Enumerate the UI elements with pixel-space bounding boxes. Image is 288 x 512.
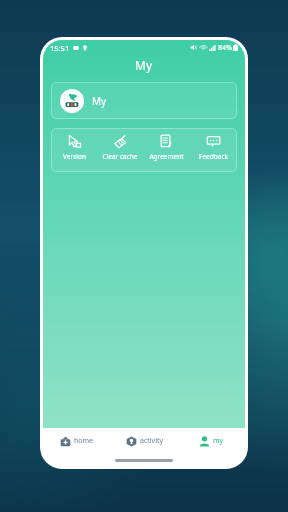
button[interactable]: Clear cache <box>97 128 143 172</box>
button[interactable]: activity <box>111 428 178 454</box>
staticText: My <box>135 57 153 73</box>
staticText: Version <box>63 152 86 161</box>
staticText: My <box>92 94 107 108</box>
button[interactable]: My <box>51 82 237 119</box>
button[interactable]: Agreement <box>143 128 190 172</box>
staticText: Clear cache <box>102 152 138 161</box>
button[interactable]: my <box>178 428 245 454</box>
staticText: Feedback <box>199 152 228 161</box>
button[interactable]: home <box>43 428 111 454</box>
staticText: activity <box>140 436 164 446</box>
staticText: Agreement <box>149 152 184 161</box>
staticText: home <box>74 436 94 446</box>
staticText: 15:51 <box>50 43 70 53</box>
button[interactable]: Version <box>51 128 97 172</box>
staticText: 84% <box>218 43 232 53</box>
staticText: my <box>213 436 224 446</box>
button[interactable]: Feedback <box>190 128 237 172</box>
